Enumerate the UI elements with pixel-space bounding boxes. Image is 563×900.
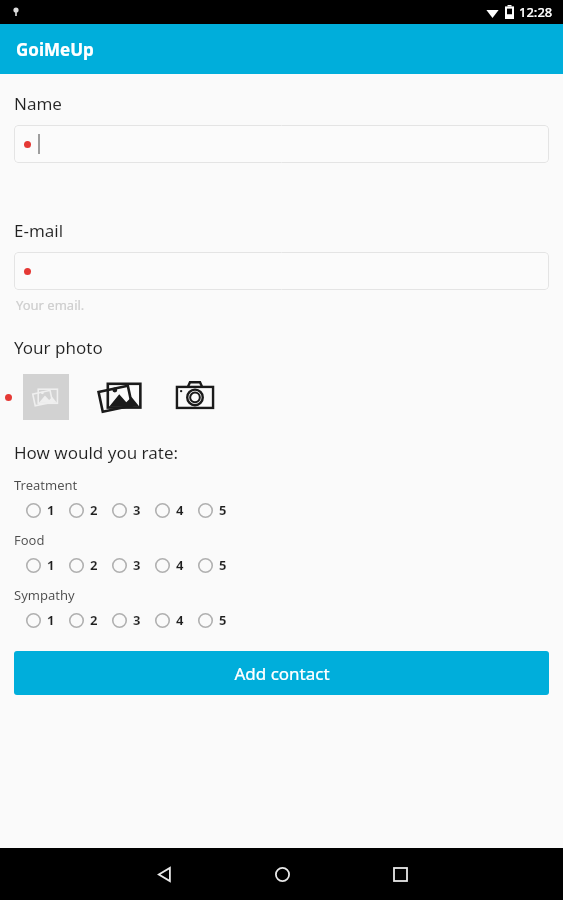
staticText: GoiMeUp [16,38,94,61]
button[interactable]: 2 [69,556,98,574]
staticText: 5 [219,611,227,629]
button[interactable]: Choose from gallery [95,371,147,423]
staticText: E-mail [14,219,64,242]
staticText: 1 [47,611,55,629]
button[interactable]: 5 [198,501,227,519]
button[interactable]: 1 [26,611,55,629]
staticText: Food [14,531,45,549]
staticText: 2 [90,556,98,574]
staticText: 4 [176,501,184,519]
button[interactable]: 1 [26,501,55,519]
staticText: Sympathy [14,586,75,604]
button[interactable]: 4 [155,501,184,519]
button[interactable]: Take photo with camera [169,371,221,423]
staticText: 4 [176,556,184,574]
button[interactable]: 4 [155,556,184,574]
button[interactable]: Recent apps [370,848,430,900]
button[interactable]: Selected photo preview [23,374,69,420]
staticText: 12:28 [519,3,553,21]
staticText: 3 [133,556,141,574]
staticText: 3 [133,611,141,629]
button[interactable] [14,252,549,290]
button[interactable]: 1 [26,556,55,574]
staticText: 2 [90,501,98,519]
staticText: Treatment [14,476,78,494]
staticText: 3 [133,501,141,519]
staticText: How would you rate: [14,441,179,464]
staticText: Your photo [14,336,103,359]
button[interactable]: 3 [112,611,141,629]
button[interactable]: 3 [112,556,141,574]
button[interactable]: 5 [198,611,227,629]
staticText: 1 [47,556,55,574]
staticText: Name [14,92,62,115]
button[interactable]: 3 [112,501,141,519]
button[interactable] [14,125,549,163]
staticText: Your email. [16,296,85,314]
button[interactable]: 5 [198,556,227,574]
button[interactable]: Home [252,848,312,900]
staticText: 1 [47,501,55,519]
staticText: Add contact [234,662,330,685]
button[interactable]: 4 [155,611,184,629]
staticText: 2 [90,611,98,629]
staticText: 4 [176,611,184,629]
button[interactable]: 2 [69,501,98,519]
staticText: 5 [219,501,227,519]
button[interactable]: Back [134,848,194,900]
button[interactable]: 2 [69,611,98,629]
staticText: 5 [219,556,227,574]
button[interactable]: Add contact [14,651,549,695]
